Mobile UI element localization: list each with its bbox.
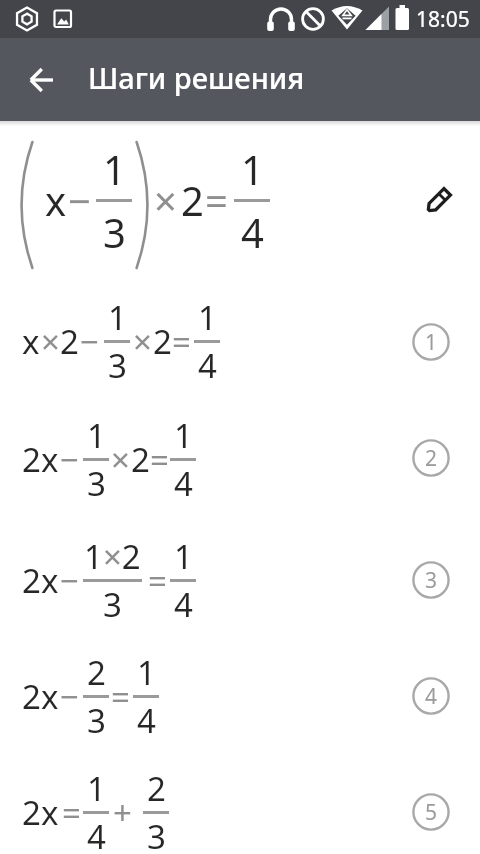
staticText: 4: [425, 682, 438, 711]
staticText: 2x: [22, 558, 59, 603]
staticText: =: [62, 790, 81, 835]
staticText: −: [60, 674, 79, 719]
staticText: 1: [108, 295, 127, 340]
staticText: 1: [198, 295, 217, 340]
staticText: 3: [147, 814, 166, 854]
staticText: =: [150, 437, 169, 482]
staticText: 4: [174, 461, 193, 506]
staticText: 1: [241, 142, 264, 196]
button[interactable]: 2x: [0, 646, 480, 746]
button[interactable]: x: [0, 125, 480, 275]
staticText: 3: [425, 566, 438, 595]
staticText: 4: [241, 205, 264, 259]
staticText: 4: [174, 582, 193, 627]
staticText: Шаги решения: [88, 58, 305, 97]
staticText: 2: [60, 319, 79, 364]
staticText: 4: [198, 343, 217, 388]
staticText: 1: [137, 650, 156, 695]
staticText: 3: [108, 343, 127, 388]
staticText: 1: [87, 766, 106, 811]
staticText: −: [80, 319, 99, 364]
button[interactable]: [423, 186, 453, 216]
staticText: ×: [154, 173, 177, 227]
staticText: 2x: [22, 674, 59, 719]
staticText: 2: [153, 319, 172, 364]
staticText: ×: [111, 437, 130, 482]
staticText: 2: [147, 766, 166, 811]
button[interactable]: x: [0, 291, 480, 391]
staticText: +: [113, 790, 132, 835]
staticText: =: [148, 558, 167, 603]
staticText: =: [111, 674, 130, 719]
staticText: 2: [131, 437, 150, 482]
button[interactable]: [30, 68, 54, 92]
staticText: 2: [87, 650, 106, 695]
staticText: =: [172, 319, 191, 364]
staticText: 2x: [22, 437, 59, 482]
staticText: −: [60, 437, 79, 482]
staticText: 2x: [22, 790, 59, 835]
staticText: 1: [103, 142, 126, 196]
button[interactable]: 2x: [0, 762, 480, 854]
button[interactable]: 2x: [0, 409, 480, 509]
staticText: 4: [87, 814, 106, 854]
staticText: 18:05: [416, 5, 470, 34]
staticText: −: [68, 173, 91, 227]
staticText: ×: [41, 319, 60, 364]
staticText: 4: [137, 698, 156, 743]
staticText: −: [60, 558, 79, 603]
staticText: 3: [87, 698, 106, 743]
staticText: 5: [425, 798, 438, 827]
staticText: 1: [174, 413, 193, 458]
staticText: 3: [103, 582, 122, 627]
staticText: x: [45, 173, 67, 227]
staticText: 3: [103, 205, 126, 259]
button[interactable]: 2x: [0, 530, 480, 630]
staticText: 2: [181, 173, 204, 227]
staticText: 1: [87, 413, 106, 458]
staticText: 1: [425, 328, 438, 357]
staticText: ×: [133, 319, 152, 364]
staticText: =: [205, 173, 228, 227]
staticText: 2: [425, 444, 438, 473]
staticText: 1: [174, 534, 193, 579]
staticText: 1×2: [84, 534, 141, 579]
staticText: 3: [87, 461, 106, 506]
staticText: x: [22, 319, 40, 364]
